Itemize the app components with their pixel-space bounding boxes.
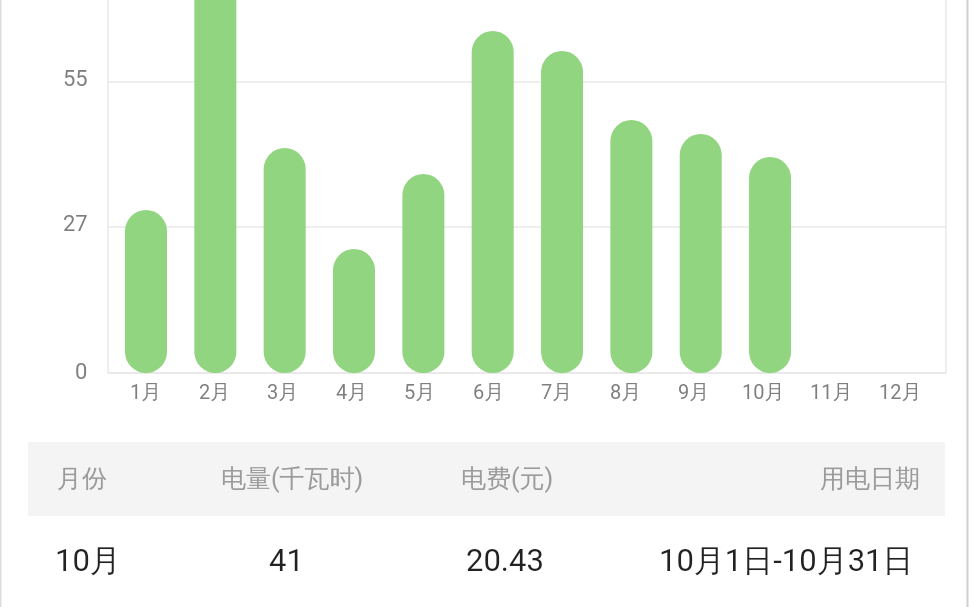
staticText: 55 [63,66,88,92]
staticText: 2月 [199,380,231,405]
staticText: 10月 [742,380,785,405]
staticText: 10月1日-10月31日 [659,541,914,580]
button[interactable] [28,524,945,596]
staticText: 用电日期 [820,463,920,494]
staticText: 月份 [57,463,107,494]
staticText: 1月 [130,380,162,405]
staticText: 4月 [336,380,368,405]
staticText: 12月 [879,380,922,405]
staticText: 7月 [541,380,573,405]
staticText: 41 [269,542,304,578]
staticText: 8月 [610,380,642,405]
staticText: 10月 [55,541,121,580]
staticText: 6月 [473,380,505,405]
staticText: 3月 [267,380,299,405]
staticText: 9月 [678,380,710,405]
staticText: 5月 [404,380,436,405]
staticText: 电费(元) [461,463,554,494]
staticText: 0 [75,359,88,385]
staticText: 11月 [810,380,853,405]
staticText: 电量(千瓦时) [221,463,364,494]
staticText: 27 [63,211,88,237]
staticText: 20.43 [466,542,544,578]
